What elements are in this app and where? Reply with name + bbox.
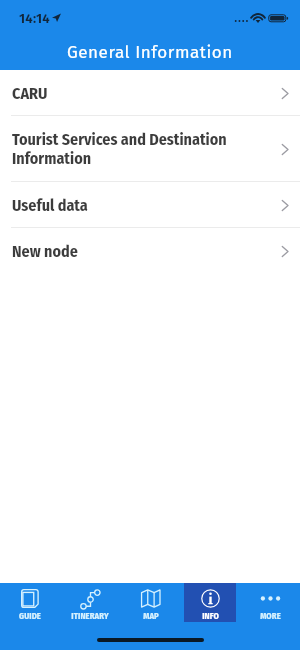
staticText: New node [12,242,255,261]
staticText: INFO [202,611,219,621]
button[interactable]: Tourist Services and Destination Informa… [0,116,300,182]
button[interactable]: Itinerary [60,583,120,622]
button[interactable]: CARU [0,70,300,116]
button[interactable]: Info [180,583,240,622]
staticText: 14:14 [19,11,50,27]
button[interactable]: Useful data [0,182,300,228]
staticText: MORE [260,611,281,621]
staticText: CARU [12,84,255,103]
staticText: Useful data [12,196,255,215]
staticText: GUIDE [19,611,41,621]
staticText: ITINERARY [71,611,109,621]
button[interactable]: New node [0,228,300,274]
staticText: General Information [67,42,233,62]
staticText: MAP [143,611,159,621]
staticText: Tourist Services and Destination Informa… [12,130,255,169]
button[interactable]: Map [120,583,180,622]
button[interactable]: Guide [0,583,60,622]
button[interactable]: More [240,583,300,622]
